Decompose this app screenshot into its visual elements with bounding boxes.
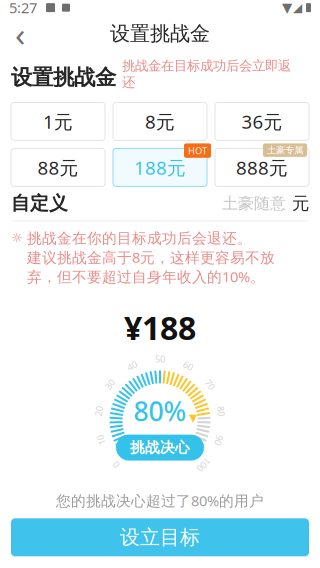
staticText: 80%	[133, 393, 186, 429]
staticText: ¥188	[124, 306, 196, 349]
staticText: HOT	[188, 144, 207, 157]
staticText: ◢	[293, 1, 302, 14]
staticText: 100	[152, 353, 167, 365]
staticText: 20	[155, 353, 165, 365]
staticText: 5:27	[9, 0, 37, 17]
staticText: 888元	[236, 155, 288, 180]
button[interactable]: Back	[0, 18, 41, 50]
staticText: 设置挑战金	[110, 21, 210, 46]
staticText: 188元	[134, 155, 186, 180]
staticText: 30	[155, 353, 165, 365]
staticText: 10	[155, 353, 165, 365]
staticText: 40	[155, 353, 165, 365]
staticText: 50	[155, 353, 165, 365]
staticText: 土豪随意	[222, 194, 286, 213]
staticText: 70	[155, 353, 165, 365]
staticText: 88元	[37, 155, 78, 180]
staticText: 90	[155, 353, 165, 365]
button[interactable]: 88元	[11, 148, 105, 186]
staticText: ▼	[282, 0, 292, 15]
staticText: 挑战决心	[130, 439, 190, 457]
staticText: 自定义	[11, 192, 68, 215]
staticText: ‹	[15, 11, 25, 56]
button[interactable]: 设立目标	[11, 518, 309, 556]
staticText: 60	[155, 353, 165, 365]
staticText: 元	[292, 193, 309, 214]
staticText: 挑战金在你的目标成功后会退还。 建议挑战金高于8元，这样更容易不放弃，但不要超过…	[27, 229, 275, 286]
button[interactable]: 888元	[215, 148, 309, 186]
staticText: 您的挑战决心超过了80%的用户	[56, 491, 264, 510]
staticText: ☼	[11, 230, 23, 245]
staticText: 设置挑战金	[11, 64, 116, 90]
staticText: 1元	[43, 109, 73, 134]
staticText: ▼	[189, 412, 197, 424]
button[interactable]: 1元	[11, 102, 105, 140]
staticText: 设立目标	[120, 525, 200, 550]
button[interactable]: 8元	[113, 102, 207, 140]
staticText: 8元	[145, 109, 175, 134]
button[interactable]: 36元	[215, 102, 309, 140]
staticText: 挑战金在目标成功后会立即返还	[122, 58, 291, 90]
staticText: 土豪专属	[267, 144, 303, 156]
button[interactable]: 挑战决心	[116, 435, 204, 461]
button[interactable]: 188元	[113, 148, 207, 186]
staticText: 80	[155, 353, 165, 365]
staticText: 0	[157, 353, 162, 365]
staticText: 36元	[241, 109, 282, 134]
